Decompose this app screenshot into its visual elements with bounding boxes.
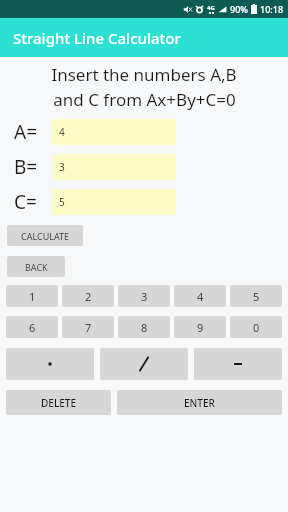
- button[interactable]: ENTER: [117, 390, 282, 415]
- button[interactable]: CALCULATE: [7, 225, 83, 246]
- staticText: A=: [14, 119, 38, 145]
- staticText: 4: [197, 289, 204, 304]
- staticText: BACK: [25, 261, 48, 273]
- button[interactable]: 3: [52, 154, 176, 180]
- button[interactable]: 1: [6, 285, 58, 307]
- button[interactable]: BACK: [7, 256, 65, 277]
- staticText: 2: [85, 289, 92, 304]
- button[interactable]: 9: [174, 316, 226, 338]
- button[interactable]: DELETE: [6, 390, 111, 415]
- staticText: 8: [141, 320, 148, 335]
- staticText: Straight Line Calculator: [13, 28, 181, 48]
- staticText: 9: [197, 320, 204, 335]
- button[interactable]: 0: [230, 316, 282, 338]
- button[interactable]: Divide: [100, 348, 188, 380]
- staticText: 10:18: [260, 3, 284, 15]
- button[interactable]: 6: [6, 316, 58, 338]
- staticText: and C from Ax+By+C=0: [53, 88, 236, 111]
- staticText: 6: [29, 320, 36, 335]
- button[interactable]: 3: [118, 285, 170, 307]
- button[interactable]: 4: [174, 285, 226, 307]
- staticText: 90%: [230, 3, 248, 15]
- button[interactable]: Decimal point: [6, 348, 94, 380]
- staticText: 4: [59, 125, 65, 139]
- staticText: 5: [59, 195, 65, 209]
- staticText: DELETE: [41, 396, 76, 410]
- button[interactable]: 4: [52, 119, 176, 145]
- button[interactable]: Minus: [194, 348, 282, 380]
- button[interactable]: 7: [62, 316, 114, 338]
- button[interactable]: 8: [118, 316, 170, 338]
- button[interactable]: 5: [230, 285, 282, 307]
- staticText: 3: [59, 160, 65, 174]
- staticText: CALCULATE: [21, 230, 70, 242]
- staticText: 5: [253, 289, 260, 304]
- staticText: 7: [85, 320, 92, 335]
- button[interactable]: 2: [62, 285, 114, 307]
- button[interactable]: 5: [52, 189, 176, 215]
- staticText: B=: [14, 154, 38, 180]
- staticText: C=: [14, 189, 37, 215]
- staticText: 0: [253, 320, 260, 335]
- staticText: 1: [29, 289, 36, 304]
- staticText: 4G: [207, 4, 215, 12]
- staticText: Insert the numbers A,B: [51, 63, 237, 86]
- staticText: 3: [141, 289, 148, 304]
- staticText: ENTER: [184, 396, 215, 410]
